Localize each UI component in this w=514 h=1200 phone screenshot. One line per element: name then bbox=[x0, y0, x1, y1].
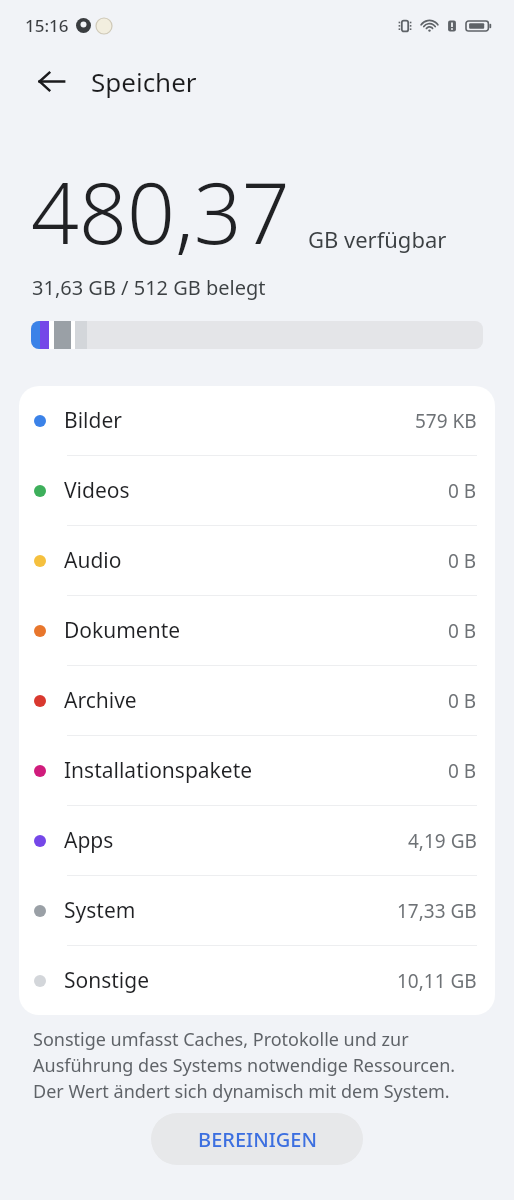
staticText: 0 B bbox=[448, 688, 477, 714]
staticText: Videos bbox=[64, 476, 130, 505]
button[interactable]: BEREINIGEN bbox=[151, 1113, 363, 1165]
button[interactable]: Dokumente bbox=[19, 596, 495, 665]
button[interactable]: Archive bbox=[19, 666, 495, 735]
staticText: 0 B bbox=[448, 478, 477, 504]
button[interactable]: Sonstige bbox=[19, 946, 495, 1015]
staticText: BEREINIGEN bbox=[198, 1126, 317, 1153]
button[interactable]: Audio bbox=[19, 526, 495, 595]
staticText: Speicher bbox=[91, 64, 197, 99]
staticText: 31,63 GB / 512 GB belegt bbox=[32, 274, 266, 301]
button[interactable]: Videos bbox=[19, 456, 495, 525]
staticText: 0 B bbox=[448, 758, 477, 784]
staticText: Audio bbox=[64, 546, 122, 575]
button[interactable]: Bilder bbox=[19, 386, 495, 455]
button[interactable]: Installationspakete bbox=[19, 736, 495, 805]
staticText: Bilder bbox=[64, 406, 122, 435]
staticText: GB verfügbar bbox=[308, 224, 447, 254]
button[interactable]: Apps bbox=[19, 806, 495, 875]
staticText: 0 B bbox=[448, 548, 477, 574]
staticText: Sonstige umfasst Caches, Protokolle und … bbox=[33, 1027, 480, 1104]
button[interactable]: System bbox=[19, 876, 495, 945]
staticText: Archive bbox=[64, 686, 137, 715]
staticText: Sonstige bbox=[64, 966, 150, 995]
staticText: 0 B bbox=[448, 618, 477, 644]
button[interactable]: Zurück bbox=[24, 54, 78, 108]
staticText: Apps bbox=[64, 826, 114, 855]
staticText: 4,19 GB bbox=[408, 828, 477, 854]
staticText: 579 KB bbox=[415, 408, 477, 434]
staticText: Dokumente bbox=[64, 616, 181, 645]
staticText: Installationspakete bbox=[64, 756, 253, 785]
staticText: 17,33 GB bbox=[397, 898, 477, 924]
staticText: 10,11 GB bbox=[397, 968, 477, 994]
staticText: System bbox=[64, 896, 136, 925]
staticText: 480,37 bbox=[31, 154, 290, 268]
staticText: 15:16 bbox=[25, 14, 69, 37]
